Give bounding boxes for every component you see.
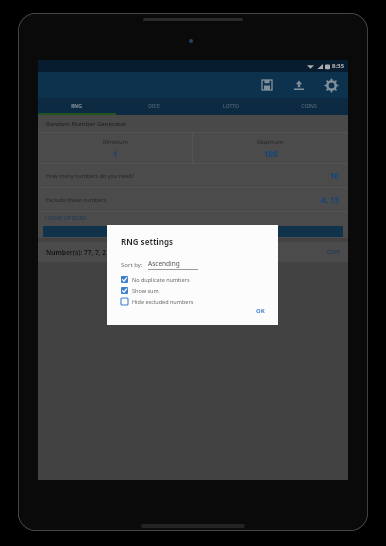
staticText: Number(s): 77, 7, 2 xyxy=(46,248,106,257)
button[interactable]: Settings xyxy=(322,76,340,94)
button[interactable]: GENERATE xyxy=(43,226,343,237)
button[interactable]: Save xyxy=(258,76,276,94)
staticText: COINS xyxy=(301,103,317,110)
button[interactable]: COPY xyxy=(327,249,340,256)
staticText: OK xyxy=(256,307,265,315)
staticText: LOTTO xyxy=(223,103,239,110)
staticText: RNG xyxy=(71,103,82,110)
staticText: Sort by: xyxy=(121,261,143,269)
staticText: Maximum xyxy=(257,138,284,145)
staticText: DICE xyxy=(148,103,160,110)
staticText: RNG settings xyxy=(121,236,174,247)
staticText: Exclude these numbers xyxy=(46,196,107,203)
button[interactable]: No duplicate numbers xyxy=(121,276,190,283)
staticText: Minimum xyxy=(103,138,128,145)
button[interactable]: How many numbers do you need? xyxy=(38,164,348,187)
button[interactable]: Maximum xyxy=(193,133,348,163)
button[interactable]: LOTTO xyxy=(192,98,270,115)
staticText: 8:35 xyxy=(332,62,344,70)
staticText: Hide excluded numbers xyxy=(132,298,194,305)
button[interactable]: Hide excluded numbers xyxy=(121,298,194,305)
staticText: Show sum xyxy=(132,287,159,294)
button[interactable]: DICE xyxy=(115,98,192,115)
button[interactable]: Exclude these numbers xyxy=(38,188,348,211)
staticText: 100 xyxy=(264,148,278,159)
button[interactable]: RNG xyxy=(38,98,115,115)
staticText: Random Number Generator xyxy=(46,120,127,128)
button[interactable]: + MORE OPTIONS xyxy=(38,212,348,225)
staticText: COPY xyxy=(327,249,340,256)
staticText: + MORE OPTIONS xyxy=(44,215,87,222)
staticText: No duplicate numbers xyxy=(132,276,190,283)
button[interactable]: Load xyxy=(290,76,308,94)
staticText: 4, 13 xyxy=(321,194,340,205)
button[interactable]: OK xyxy=(253,304,268,318)
staticText: How many numbers do you need? xyxy=(46,172,135,179)
staticText: 10 xyxy=(330,170,340,181)
button[interactable]: Show sum xyxy=(121,287,159,294)
staticText: Ascending xyxy=(148,259,180,268)
staticText: 1 xyxy=(113,148,118,159)
button[interactable]: COINS xyxy=(270,98,348,115)
